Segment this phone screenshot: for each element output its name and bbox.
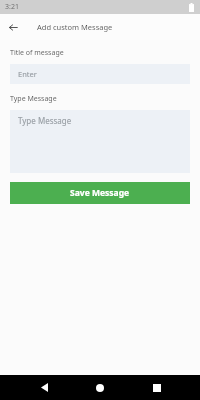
- staticText: Save Message: [70, 187, 130, 199]
- staticText: Type Message: [18, 115, 72, 126]
- staticText: Enter: [18, 69, 37, 79]
- button[interactable]: Type Message: [10, 110, 190, 173]
- button[interactable]: Recent apps: [144, 375, 170, 400]
- button[interactable]: Home: [87, 375, 113, 400]
- staticText: Title of message: [10, 48, 64, 58]
- staticText: 3:21: [5, 2, 19, 12]
- button[interactable]: Save Message: [10, 182, 190, 204]
- button[interactable]: Enter: [10, 64, 190, 84]
- button[interactable]: Back: [31, 375, 57, 400]
- button[interactable]: Back: [0, 14, 26, 40]
- staticText: Type Message: [10, 94, 57, 104]
- staticText: Add custom Message: [37, 22, 113, 32]
